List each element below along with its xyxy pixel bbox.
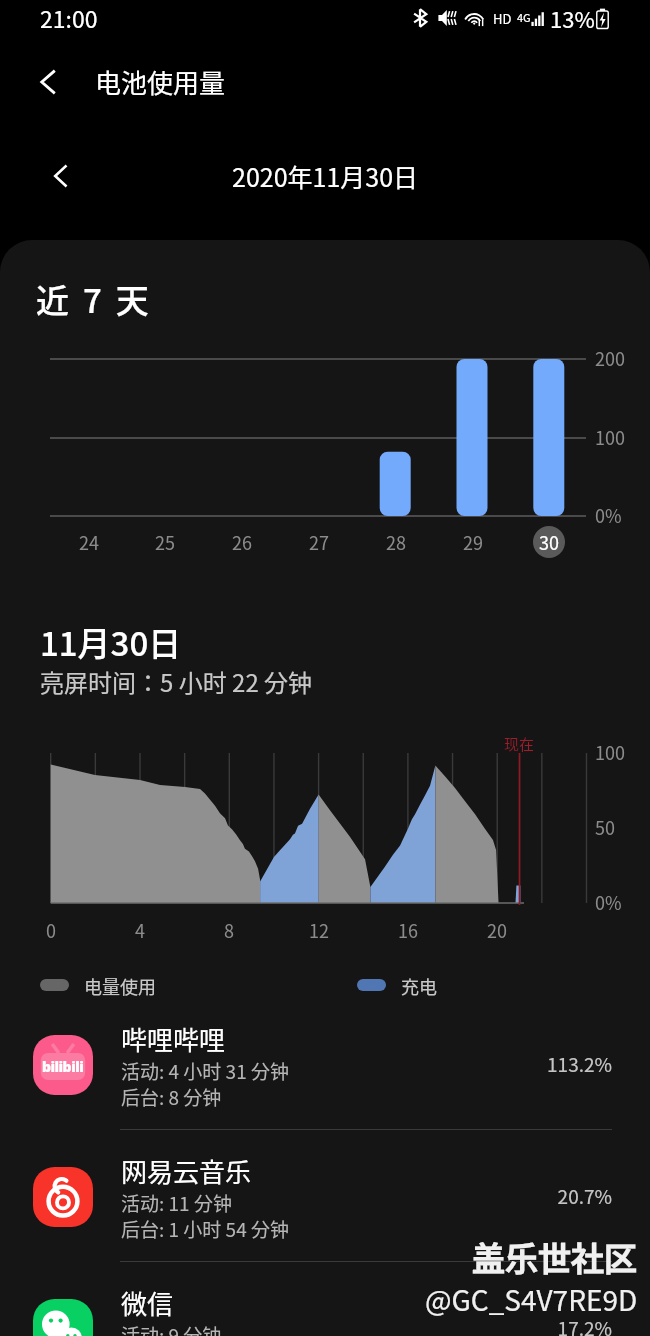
staticText: 13% [550,2,595,34]
staticText: 200 [595,345,625,371]
staticText: 12 [309,917,329,943]
staticText: 25 [155,529,175,555]
staticText: 2020年11月30日 [232,158,419,194]
staticText: 20 [487,917,507,943]
button[interactable]: 前一天 [38,154,82,198]
staticText: @GC_S4V7RE9D [425,1279,638,1320]
other: 返回 [35,69,61,95]
button[interactable]: 返回 [0,52,244,112]
staticText: 近 7 天 [36,275,153,323]
staticText: 4G [517,9,531,25]
staticText: 电池使用量 [95,63,226,101]
staticText: 后台: 1 小时 54 分钟 [121,1215,289,1243]
button[interactable]: bilibili [0,969,650,1101]
staticText: 0 [46,917,56,943]
staticText: 26 [232,529,252,555]
staticText: 后台: 8 分钟 [121,1083,222,1111]
staticText: 17.2% [462,1314,612,1336]
staticText: 21:00 [40,1,98,34]
staticText: 11月30日 [40,618,182,666]
staticText: 微信 [121,1284,174,1322]
staticText: 网易云音乐 [121,1152,252,1190]
staticText: 电量使用 [84,973,156,999]
staticText: bilibili [42,1057,84,1076]
staticText: 哔哩哔哩 [121,1020,226,1058]
staticText: 活动: 11 分钟 [121,1189,232,1217]
staticText: 现在 [504,733,535,755]
staticText: 4 [135,917,145,943]
staticText: 亮屏时间：5 小时 22 分钟 [40,664,313,699]
staticText: 100 [595,424,625,450]
staticText: 29 [463,529,483,555]
staticText: 0% [595,502,622,528]
staticText: 113.2% [462,1050,612,1078]
staticText: 28 [386,529,406,555]
staticText: 0% [595,889,622,915]
staticText: 20.7% [462,1182,612,1210]
staticText: 盖乐世社区 [472,1233,637,1281]
staticText: 100 [595,739,625,765]
button[interactable]: 微信 [0,1233,650,1336]
staticText: 50 [595,814,615,840]
staticText: 16 [398,917,418,943]
staticText: 27 [309,529,329,555]
staticText: 24 [79,529,99,555]
staticText: 活动: 4 小时 31 分钟 [121,1057,289,1085]
button[interactable]: 网易云音乐 [0,1101,650,1233]
staticText: 30 [539,529,559,555]
staticText: 8 [224,917,234,943]
staticText: 活动: 9 分钟 [121,1321,222,1336]
staticText: 充电 [401,973,437,999]
staticText: HD [493,9,512,28]
